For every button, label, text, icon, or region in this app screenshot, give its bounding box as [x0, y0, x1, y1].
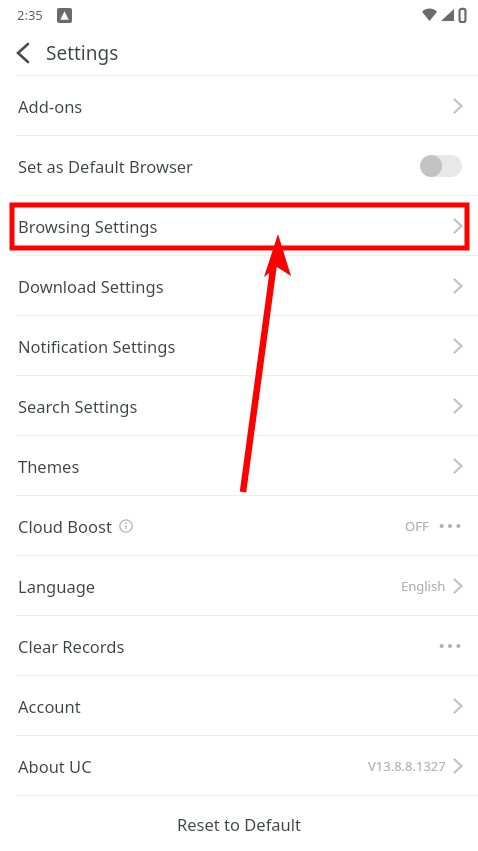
button[interactable]: Add-ons — [0, 76, 478, 135]
button[interactable]: Notification Settings — [0, 316, 478, 375]
staticText: Clear Records — [18, 635, 125, 657]
staticText: Download Settings — [18, 275, 164, 297]
staticText: Settings — [46, 40, 119, 66]
staticText: Language — [18, 575, 96, 597]
button[interactable]: Reset to Default — [0, 796, 478, 851]
button[interactable]: Download Settings — [0, 256, 478, 315]
button[interactable]: Back — [0, 30, 46, 75]
button[interactable]: Set as Default Browser toggle — [420, 155, 462, 177]
staticText: OFF — [405, 517, 429, 535]
button[interactable]: Language — [0, 556, 478, 615]
button[interactable]: Account — [0, 676, 478, 735]
button[interactable]: More options — [438, 636, 462, 656]
button[interactable]: Themes — [0, 436, 478, 495]
button[interactable]: Clear Records — [0, 616, 478, 675]
button[interactable]: Browsing Settings — [0, 196, 478, 255]
button[interactable]: Cloud Boost — [0, 496, 478, 555]
button[interactable]: More options — [438, 516, 462, 536]
staticText: Cloud Boost — [18, 515, 112, 537]
staticText: Search Settings — [18, 395, 138, 417]
staticText: V13.8.8.1327 — [368, 757, 446, 775]
staticText: English — [401, 577, 446, 595]
staticText: 2:35 — [17, 6, 43, 24]
staticText: About UC — [18, 755, 92, 777]
button[interactable]: About UC — [0, 736, 478, 795]
staticText: Notification Settings — [18, 335, 176, 357]
staticText: Themes — [18, 455, 80, 477]
button[interactable]: Search Settings — [0, 376, 478, 435]
button[interactable]: Set as Default Browser — [0, 136, 478, 195]
staticText: Browsing Settings — [18, 215, 158, 237]
staticText: Set as Default Browser — [18, 155, 193, 177]
staticText: Account — [18, 695, 81, 717]
staticText: Reset to Default — [177, 813, 301, 835]
staticText: Add-ons — [18, 95, 83, 117]
